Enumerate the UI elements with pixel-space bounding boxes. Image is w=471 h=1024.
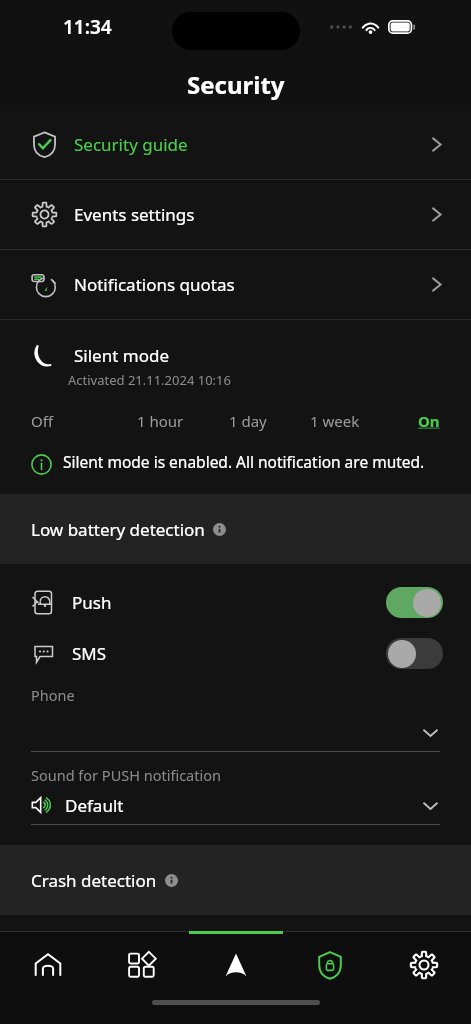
staticText: Security [187,68,285,101]
button[interactable]: Security guide [0,110,471,179]
button[interactable]: Home [0,934,95,996]
other: Disabled [386,638,443,669]
button[interactable]: SMS [0,628,471,679]
staticText: Sound for PUSH notification [31,765,221,785]
staticText: Default [65,794,124,817]
staticText: Notifications quotas [74,273,235,296]
staticText: Phone [31,685,75,705]
button[interactable]: Devices [95,934,189,996]
staticText: Crash detection [31,869,157,892]
staticText: On [418,411,440,431]
staticText: Off [31,411,54,431]
staticText: 11:34 [63,14,112,40]
button[interactable]: Push [0,577,471,628]
button[interactable]: Navigate [189,934,283,996]
button[interactable]: On [378,406,440,436]
staticText: Activated 21.11.2024 10:16 [68,371,231,389]
staticText: 1 week [310,411,360,431]
staticText: 1 day [229,411,267,431]
staticText: Silent mode is enabled. All notification… [63,451,425,472]
button[interactable]: 1 week [291,406,378,436]
staticText: 1 hour [137,411,184,431]
button[interactable]: Events settings [0,180,471,249]
button[interactable]: Settings [377,934,471,996]
staticText: Events settings [74,203,195,226]
button[interactable]: Security [283,934,377,996]
staticText: Security guide [74,133,188,156]
other: Enabled [386,587,443,618]
button[interactable]: 1 day [204,406,291,436]
button[interactable]: Notifications quotas [0,250,471,319]
button[interactable]: Sound for PUSH notification [0,765,471,825]
staticText: Low battery detection [31,518,205,541]
staticText: Push [72,591,112,614]
button[interactable]: 1 hour [117,406,204,436]
staticText: Silent mode [74,344,169,367]
staticText: SMS [72,642,107,665]
button[interactable]: Phone [0,685,471,752]
button[interactable]: Off [31,406,117,436]
